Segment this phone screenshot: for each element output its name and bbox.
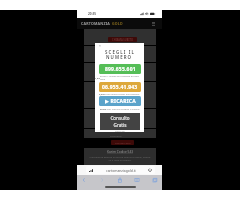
- staticText: Clicca qui: [115, 130, 125, 133]
- staticText: PAGA: [100, 107, 107, 110]
- staticText: 899.655.601: [105, 66, 136, 73]
- button[interactable]: CHIAMA SUBITO: [108, 37, 137, 42]
- button[interactable]: CHIAMA ORA: [111, 140, 134, 145]
- button[interactable]: Forward: [98, 176, 106, 184]
- button[interactable]: Reload page: [148, 168, 152, 172]
- button[interactable]: 899.655.601: [99, 64, 141, 74]
- button[interactable]: Tabs: [151, 176, 159, 184]
- staticText: ×: [99, 44, 101, 48]
- staticText: ▶ RICARICA: [105, 98, 136, 105]
- button[interactable]: Open menu: [151, 21, 156, 26]
- staticText: con Carta di Credito o PayPal: [107, 107, 140, 110]
- button[interactable]: cartomanziagold.it: [86, 166, 155, 174]
- staticText: CHIAMA SUBITO: [112, 38, 133, 42]
- staticText: €/min + scatto alla risposta da rete fis…: [100, 74, 144, 80]
- staticText: 0,99: [99, 92, 104, 95]
- staticText: Contattaci: [110, 134, 122, 137]
- staticText: NUMERO: [106, 54, 133, 60]
- staticText: cartomanziagold.it: [106, 168, 136, 173]
- staticText: 20:35: [88, 12, 97, 16]
- staticText: Consulto Gratis: [110, 115, 130, 128]
- button[interactable]: Share: [116, 176, 124, 184]
- button[interactable]: Back: [80, 176, 88, 184]
- staticText: GOLD: [112, 21, 123, 26]
- staticText: 1,83: [95, 76, 100, 79]
- staticText: CARTOMANZIA: [81, 21, 112, 26]
- staticText: CHIAMA ORA: [115, 141, 131, 144]
- button[interactable]: ▶ RICARICA: [99, 96, 141, 106]
- button[interactable]: 06.955.41.943: [99, 82, 141, 92]
- button[interactable]: Close: [98, 44, 102, 48]
- staticText: 06.955.41.943: [102, 84, 138, 91]
- button[interactable]: Bookmarks: [133, 176, 141, 184]
- staticText: SCEGLI IL: [105, 49, 135, 55]
- staticText: Karim Codice 543: [107, 150, 134, 154]
- staticText: €/min senza scatto alla risposta: [104, 92, 140, 95]
- button[interactable]: Consulto Gratis: [100, 113, 140, 130]
- staticText: Cartomante esperto in lettura tarocchi e…: [88, 155, 152, 161]
